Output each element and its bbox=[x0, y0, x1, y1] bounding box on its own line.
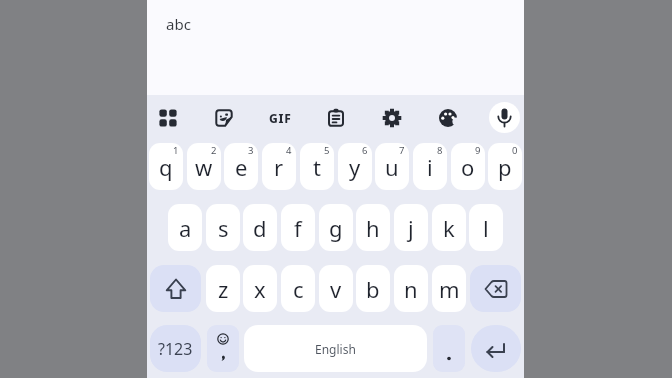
staticText: GIF bbox=[269, 110, 292, 126]
button[interactable]: j bbox=[394, 204, 428, 251]
button[interactable] bbox=[207, 325, 239, 372]
button[interactable]: r bbox=[262, 143, 296, 190]
staticText: 3 bbox=[248, 144, 254, 157]
button[interactable]: b bbox=[356, 265, 390, 312]
staticText: q bbox=[159, 152, 173, 182]
staticText: e bbox=[235, 152, 248, 182]
staticText: ?123 bbox=[158, 338, 193, 360]
staticText: 1 bbox=[173, 144, 179, 157]
staticText: i bbox=[427, 152, 433, 182]
button[interactable]: ?123 bbox=[150, 325, 201, 372]
button[interactable] bbox=[470, 265, 521, 312]
button[interactable]: s bbox=[206, 204, 240, 251]
staticText: k bbox=[443, 213, 455, 243]
staticText: j bbox=[408, 213, 414, 243]
button[interactable]: f bbox=[281, 204, 315, 251]
button[interactable]: g bbox=[319, 204, 353, 251]
button[interactable] bbox=[206, 100, 242, 136]
button[interactable]: k bbox=[432, 204, 466, 251]
button[interactable]: c bbox=[281, 265, 315, 312]
button[interactable] bbox=[430, 100, 466, 136]
staticText: 7 bbox=[399, 144, 405, 157]
button[interactable]: English bbox=[244, 325, 427, 372]
staticText: abc bbox=[166, 14, 191, 34]
staticText: 6 bbox=[362, 144, 368, 157]
staticText: f bbox=[294, 213, 302, 243]
staticText: p bbox=[498, 152, 512, 182]
button[interactable]: z bbox=[206, 265, 240, 312]
staticText: v bbox=[330, 274, 342, 304]
button[interactable] bbox=[471, 325, 521, 372]
staticText: English bbox=[315, 341, 356, 357]
staticText: c bbox=[293, 274, 304, 304]
button[interactable]: x bbox=[243, 265, 277, 312]
button[interactable] bbox=[374, 100, 410, 136]
button[interactable]: p bbox=[488, 143, 522, 190]
button[interactable]: q bbox=[149, 143, 183, 190]
staticText: h bbox=[366, 213, 380, 243]
button[interactable]: v bbox=[319, 265, 353, 312]
staticText: u bbox=[385, 152, 399, 182]
button[interactable] bbox=[150, 100, 186, 136]
button[interactable]: w bbox=[187, 143, 221, 190]
staticText: 4 bbox=[286, 144, 292, 157]
staticText: l bbox=[483, 213, 489, 243]
button[interactable] bbox=[433, 325, 465, 372]
staticText: m bbox=[439, 274, 460, 304]
button[interactable]: i bbox=[413, 143, 447, 190]
staticText: 5 bbox=[324, 144, 330, 157]
staticText: t bbox=[313, 152, 321, 182]
button[interactable]: GIF bbox=[262, 106, 298, 130]
button[interactable]: a bbox=[168, 204, 202, 251]
button[interactable]: t bbox=[300, 143, 334, 190]
staticText: 0 bbox=[512, 144, 518, 157]
button[interactable]: h bbox=[356, 204, 390, 251]
staticText: 8 bbox=[437, 144, 443, 157]
button[interactable]: l bbox=[469, 204, 503, 251]
button[interactable] bbox=[489, 102, 520, 133]
button[interactable]: o bbox=[451, 143, 485, 190]
staticText: 2 bbox=[211, 144, 217, 157]
staticText: d bbox=[253, 213, 267, 243]
staticText: z bbox=[218, 274, 229, 304]
staticText: x bbox=[254, 274, 266, 304]
button[interactable]: y bbox=[338, 143, 372, 190]
staticText: r bbox=[274, 152, 284, 182]
staticText: o bbox=[461, 152, 475, 182]
staticText: n bbox=[404, 274, 418, 304]
button[interactable]: m bbox=[432, 265, 466, 312]
button[interactable] bbox=[318, 100, 354, 136]
button[interactable] bbox=[150, 265, 201, 312]
staticText: s bbox=[218, 213, 229, 243]
button[interactable]: n bbox=[394, 265, 428, 312]
button[interactable]: abc bbox=[147, 0, 524, 95]
staticText: a bbox=[179, 213, 192, 243]
staticText: 9 bbox=[475, 144, 481, 157]
staticText: g bbox=[329, 213, 343, 243]
button[interactable]: u bbox=[375, 143, 409, 190]
button[interactable]: d bbox=[243, 204, 277, 251]
button[interactable]: e bbox=[224, 143, 258, 190]
staticText: w bbox=[195, 152, 213, 182]
staticText: y bbox=[349, 152, 361, 182]
staticText: b bbox=[366, 274, 380, 304]
